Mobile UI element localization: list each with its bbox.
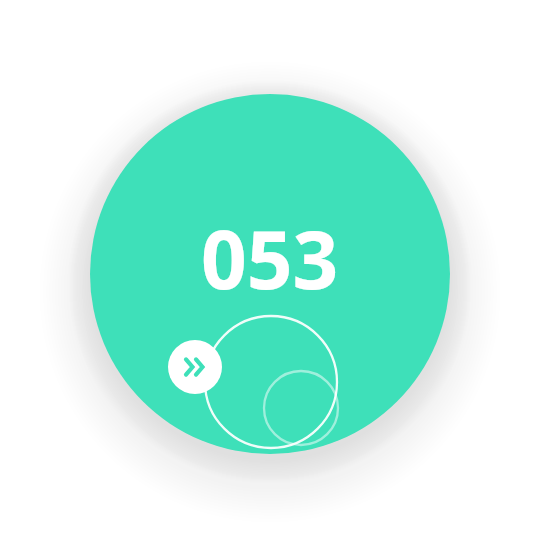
button[interactable]: Next bbox=[168, 340, 222, 394]
